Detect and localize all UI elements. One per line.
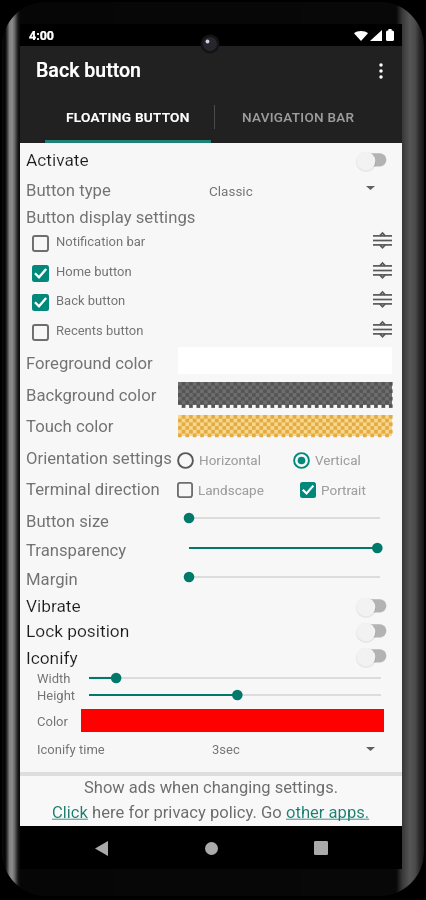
button[interactable]: Adjust Home button xyxy=(370,259,395,288)
staticText: Iconify xyxy=(26,648,78,668)
button[interactable]: Click xyxy=(52,803,88,822)
staticText: Back button xyxy=(56,293,126,308)
button[interactable]: Home button xyxy=(20,259,402,288)
staticText: Button type xyxy=(26,181,111,201)
staticText: 4:00 xyxy=(29,28,55,43)
button[interactable]: Horizontal xyxy=(177,449,261,471)
staticText: Horizontal xyxy=(199,452,261,468)
button[interactable]: Vibrate xyxy=(20,592,402,617)
button[interactable]: Button type xyxy=(20,175,402,204)
staticText: Button display settings xyxy=(26,208,196,228)
staticText: Foreground color xyxy=(26,354,153,374)
button[interactable]: Home xyxy=(194,831,228,865)
staticText: Portrait xyxy=(321,482,366,498)
staticText: Transparency xyxy=(26,541,127,561)
staticText: Landscape xyxy=(198,482,264,498)
button[interactable]: FLOATING BUTTON xyxy=(45,95,211,143)
staticText: Back button xyxy=(36,59,142,82)
button[interactable]: More options xyxy=(361,51,401,91)
button[interactable]: Vertical xyxy=(293,449,361,471)
button[interactable]: Landscape xyxy=(177,479,264,501)
staticText: Width xyxy=(37,671,71,686)
staticText: Terminal direction xyxy=(26,480,160,500)
staticText: Activate xyxy=(26,150,89,170)
button[interactable]: Back xyxy=(84,831,118,865)
button[interactable]: other apps. xyxy=(286,803,370,822)
button[interactable]: NAVIGATION BAR xyxy=(215,95,381,143)
button[interactable]: Transparency slider xyxy=(182,537,387,559)
staticText: Recents button xyxy=(56,323,144,338)
staticText: 3sec xyxy=(212,742,240,757)
button[interactable]: Notification bar xyxy=(20,229,402,258)
staticText: FLOATING BUTTON xyxy=(66,109,190,125)
staticText: Vibrate xyxy=(26,596,81,616)
button[interactable]: Iconify time xyxy=(20,737,402,763)
button[interactable]: Background color xyxy=(178,382,392,405)
staticText: Classic xyxy=(209,183,253,199)
staticText: NAVIGATION BAR xyxy=(242,109,355,125)
button[interactable]: Portrait xyxy=(300,479,366,501)
staticText: here for privacy policy. Go xyxy=(88,803,286,822)
staticText: Notification bar xyxy=(56,234,146,249)
staticText: Home button xyxy=(56,264,132,279)
staticText: Height xyxy=(37,688,76,703)
button[interactable]: Recents xyxy=(304,831,338,865)
staticText: Color xyxy=(37,714,68,729)
staticText: Show ads when changing settings. xyxy=(84,778,338,797)
button[interactable]: Touch color xyxy=(178,415,392,436)
button[interactable]: Lock position xyxy=(20,617,402,642)
staticText: Button size xyxy=(26,512,109,532)
button[interactable]: Adjust Notification bar xyxy=(370,229,395,258)
button[interactable]: Height slider xyxy=(82,686,388,704)
staticText: Orientation settings xyxy=(26,449,172,469)
staticText: Margin xyxy=(26,570,78,590)
staticText: Background color xyxy=(26,386,157,406)
button[interactable]: Iconify xyxy=(20,642,402,667)
staticText: Lock position xyxy=(26,621,130,641)
button[interactable]: Back button xyxy=(20,288,402,317)
staticText: Touch color xyxy=(26,417,114,437)
staticText: Vertical xyxy=(315,452,361,468)
button[interactable]: Margin slider xyxy=(182,566,387,588)
button[interactable]: Adjust Recents button xyxy=(370,318,395,347)
button[interactable]: Width slider xyxy=(82,669,388,687)
button[interactable]: Recents button xyxy=(20,318,402,347)
button[interactable]: Adjust Back button xyxy=(370,288,395,317)
button[interactable]: Activate xyxy=(20,146,402,175)
button[interactable]: Button size slider xyxy=(182,507,387,529)
staticText: Iconify time xyxy=(37,742,105,757)
